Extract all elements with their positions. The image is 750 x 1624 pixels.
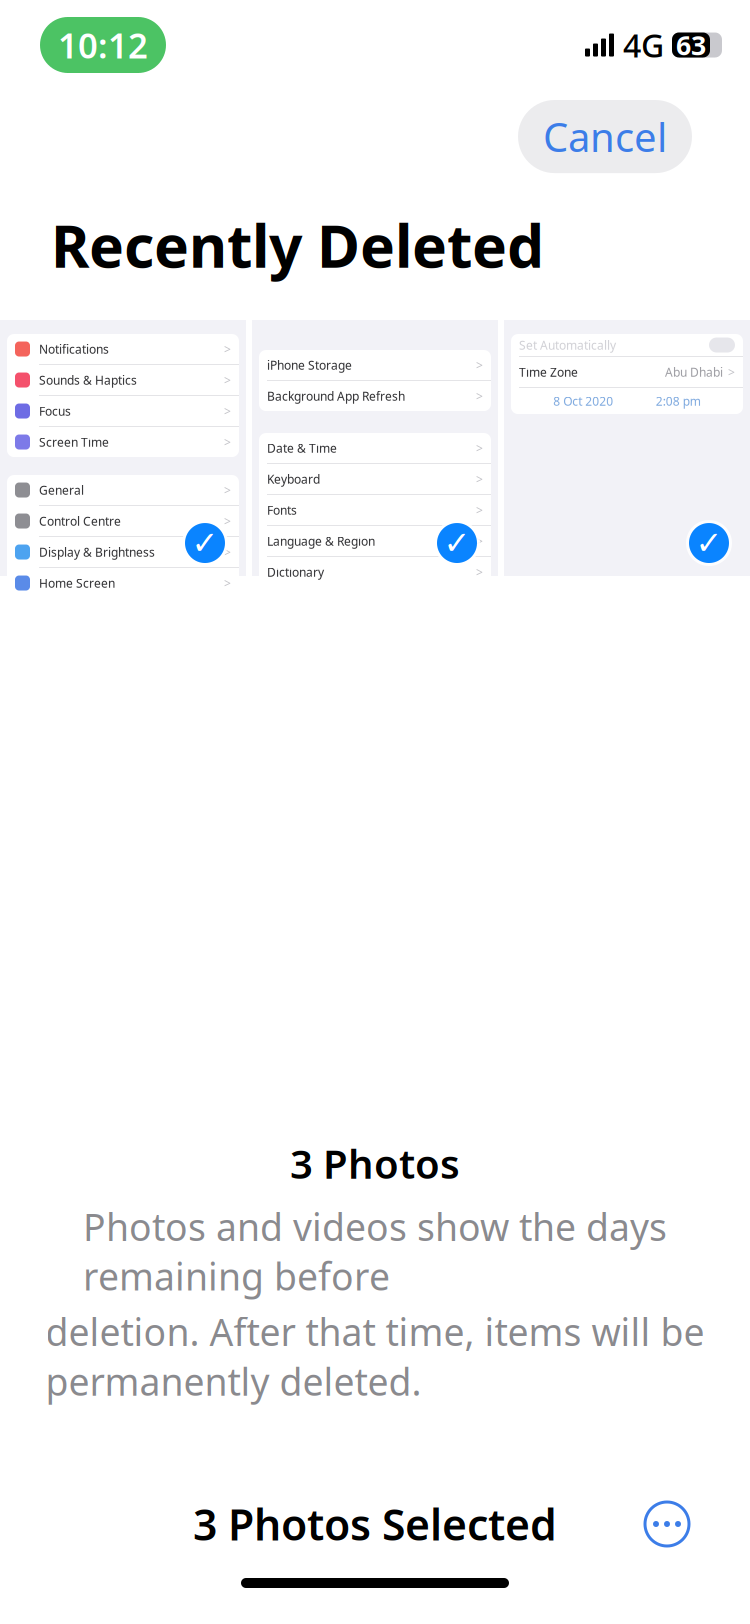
staticText: > xyxy=(224,575,231,591)
staticText: > xyxy=(476,564,483,580)
staticText: Fonts xyxy=(267,502,297,518)
staticText: > xyxy=(224,372,231,388)
staticText: Cancel xyxy=(543,110,667,163)
staticText: > xyxy=(476,533,483,549)
staticText: 2:08 pm xyxy=(656,393,701,409)
staticText: ✓ xyxy=(695,525,722,561)
staticText: Date & Time xyxy=(267,440,337,456)
staticText: Screen Time xyxy=(39,434,109,450)
staticText: Display & Brightness xyxy=(39,544,155,560)
staticText: > xyxy=(224,434,231,450)
staticText: Time Zone xyxy=(519,364,578,380)
staticText: ✓ xyxy=(443,525,470,561)
staticText: > xyxy=(224,482,231,498)
staticText: > xyxy=(224,341,231,357)
staticText: Control Centre xyxy=(39,513,121,529)
staticText: 10:12 xyxy=(58,22,148,68)
staticText: Background App Refresh xyxy=(267,388,405,404)
staticText: 63 xyxy=(676,27,706,63)
staticText: 3 Photos xyxy=(290,1137,460,1190)
staticText: General xyxy=(39,482,84,498)
staticText: Set Automatically xyxy=(519,337,616,353)
staticText: > xyxy=(728,364,735,380)
staticText: > xyxy=(224,513,231,529)
staticText: > xyxy=(476,471,483,487)
staticText: deletion. After that time, items will be… xyxy=(45,1307,704,1406)
staticText: > xyxy=(224,544,231,560)
staticText: ✓ xyxy=(191,525,218,561)
staticText: Photos and videos show the days remainin… xyxy=(83,1202,667,1301)
staticText: Abu Dhabi xyxy=(665,364,723,380)
staticText: iPhone Storage xyxy=(267,357,352,373)
staticText: 8 Oct 2020 xyxy=(553,393,613,409)
staticText: Sounds & Haptics xyxy=(39,372,137,388)
staticText: Dictionary xyxy=(267,564,324,580)
staticText: Keyboard xyxy=(267,471,320,487)
staticText: > xyxy=(224,403,231,419)
button[interactable]: Cancel xyxy=(518,100,692,173)
staticText: Home Screen xyxy=(39,575,115,591)
staticText: 3 Photos Selected xyxy=(193,1496,557,1552)
staticText: > xyxy=(476,388,483,404)
staticText: Focus xyxy=(39,403,71,419)
staticText: Recently Deleted xyxy=(51,206,544,284)
staticText: Language & Region xyxy=(267,533,375,549)
staticText: 4G xyxy=(623,24,664,66)
button[interactable]: More options xyxy=(637,1494,697,1554)
staticText: > xyxy=(476,440,483,456)
staticText: Notifications xyxy=(39,341,109,357)
staticText: > xyxy=(476,357,483,373)
staticText: > xyxy=(476,502,483,518)
